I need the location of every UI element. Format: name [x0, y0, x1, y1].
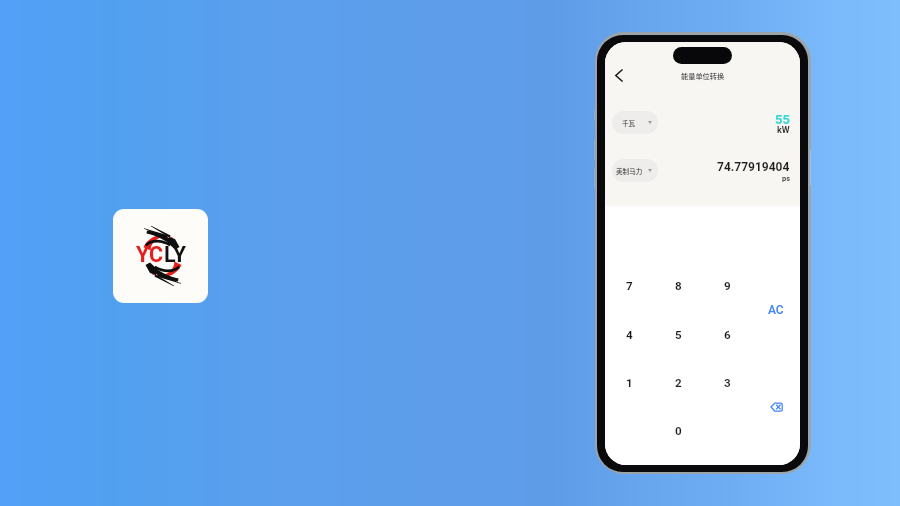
- staticText: 7: [626, 279, 633, 293]
- staticText: LY: [164, 242, 187, 267]
- button[interactable]: 2: [662, 371, 694, 395]
- staticText: 5: [675, 328, 682, 342]
- staticText: 3: [724, 376, 731, 390]
- staticText: kW: [777, 125, 790, 136]
- staticText: 6: [724, 328, 731, 342]
- staticText: 9: [724, 279, 731, 293]
- staticText: 4: [626, 328, 633, 342]
- staticText: 2: [675, 376, 682, 390]
- button[interactable]: 6: [711, 323, 743, 347]
- button[interactable]: 5: [662, 323, 694, 347]
- button[interactable]: 美制马力: [612, 159, 658, 182]
- button[interactable]: YCLY app icon: [113, 209, 208, 303]
- button[interactable]: 9: [711, 274, 743, 298]
- staticText: 千瓦: [622, 118, 636, 128]
- button[interactable]: 4: [613, 323, 645, 347]
- staticText: 美制马力: [616, 166, 643, 176]
- button[interactable]: AC: [762, 300, 790, 320]
- staticText: 8: [675, 279, 682, 293]
- button[interactable]: 千瓦: [612, 111, 658, 134]
- staticText: AC: [768, 303, 784, 317]
- button[interactable]: Back: [609, 66, 627, 84]
- staticText: 1: [626, 376, 633, 390]
- staticText: 74.77919404: [717, 160, 790, 174]
- button[interactable]: 3: [711, 371, 743, 395]
- staticText: ps: [782, 174, 790, 183]
- staticText: 能量单位转换: [681, 71, 725, 81]
- staticText: 55: [775, 112, 790, 127]
- staticText: YC: [136, 242, 164, 267]
- button[interactable]: 1: [613, 371, 645, 395]
- button[interactable]: 8: [662, 274, 694, 298]
- staticText: 0: [675, 424, 682, 438]
- button[interactable]: 7: [613, 274, 645, 298]
- button[interactable]: 0: [662, 419, 694, 443]
- button[interactable]: Backspace: [767, 398, 785, 416]
